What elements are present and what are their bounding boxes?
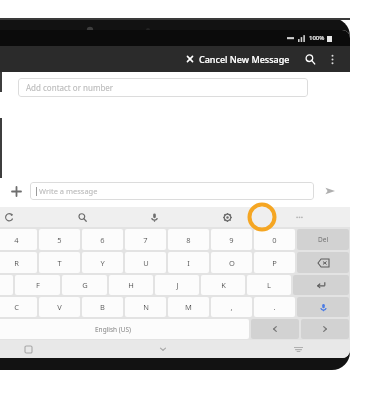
staticText: Del <box>318 235 329 244</box>
button[interactable]: 9 <box>211 229 252 250</box>
button[interactable]: Add attachment <box>6 181 26 201</box>
button[interactable]: L <box>247 275 291 295</box>
button[interactable]: T <box>39 252 80 273</box>
button[interactable]: mic <box>297 297 349 317</box>
staticText: U <box>143 258 149 268</box>
staticText: B <box>100 302 105 312</box>
staticText: R <box>14 258 19 268</box>
staticText: V <box>57 302 62 312</box>
button[interactable]: Move cursor right <box>301 319 349 339</box>
staticText: , <box>230 302 233 312</box>
button[interactable]: H <box>109 275 153 295</box>
staticText: 4 <box>14 235 19 245</box>
button[interactable]: backspace <box>297 252 349 273</box>
staticText: 8 <box>186 235 191 245</box>
button[interactable]: 6 <box>82 229 123 250</box>
button[interactable]: I <box>168 252 209 273</box>
button[interactable]: , <box>211 297 252 317</box>
staticText: . <box>273 302 276 312</box>
button[interactable]: 5 <box>39 229 80 250</box>
staticText: J <box>176 280 179 290</box>
button[interactable]: Write a message <box>30 182 314 200</box>
button[interactable]: Stickers <box>0 208 18 226</box>
staticText: Write a message <box>39 186 98 196</box>
staticText: Cancel New Message <box>199 53 290 65</box>
staticText: I <box>187 258 190 268</box>
staticText: 7 <box>143 235 148 245</box>
staticText: 9 <box>229 235 234 245</box>
button[interactable]: Recent apps <box>20 341 36 357</box>
button[interactable]: English (US) <box>0 319 249 339</box>
button[interactable]: Keyboard layout <box>290 341 306 357</box>
staticText: M <box>185 302 192 312</box>
button[interactable]: Send <box>320 181 340 201</box>
button[interactable]: O <box>211 252 252 273</box>
button[interactable]: Cancel New Message <box>182 50 294 68</box>
button[interactable]: Search <box>73 208 91 226</box>
button[interactable]: N <box>125 297 166 317</box>
button[interactable]: V <box>39 297 80 317</box>
staticText: G <box>82 280 88 290</box>
button[interactable]: Move cursor left <box>251 319 299 339</box>
button[interactable]: del <box>297 229 349 250</box>
button[interactable]: C <box>0 297 37 317</box>
staticText: 0 <box>272 235 277 245</box>
button[interactable]: P <box>254 252 295 273</box>
button[interactable]: 4 <box>0 229 37 250</box>
button[interactable]: More options <box>322 49 342 69</box>
button[interactable]: enter <box>293 275 349 295</box>
button[interactable]: More keyboard options <box>290 208 308 226</box>
button[interactable]: U <box>125 252 166 273</box>
button[interactable]: K <box>201 275 245 295</box>
staticText: Y <box>100 258 105 268</box>
button[interactable]: . <box>254 297 295 317</box>
staticText: 6 <box>100 235 105 245</box>
button[interactable]: M <box>168 297 209 317</box>
staticText: T <box>57 258 62 268</box>
staticText: K <box>221 280 226 290</box>
button[interactable]: F <box>15 275 60 295</box>
staticText: C <box>14 302 19 312</box>
staticText: N <box>143 302 149 312</box>
staticText: O <box>229 258 235 268</box>
button[interactable]: 7 <box>125 229 166 250</box>
staticText: 5 <box>57 235 62 245</box>
button[interactable]: 0 <box>254 229 295 250</box>
staticText: English (US) <box>95 325 132 334</box>
staticText: Add contact or number <box>26 82 114 93</box>
button[interactable]: B <box>82 297 123 317</box>
staticText: 100% <box>309 34 325 42</box>
button[interactable]: Add contact or number <box>18 78 308 97</box>
staticText: H <box>128 280 134 290</box>
staticText: F <box>36 280 40 290</box>
staticText: L <box>267 280 271 290</box>
staticText: P <box>272 258 277 268</box>
button[interactable]: Voice input <box>145 208 163 226</box>
other: Keyboard settings highlighted <box>247 202 277 232</box>
button[interactable]: Keyboard settings <box>218 208 236 226</box>
button[interactable]: G <box>62 275 107 295</box>
button[interactable]: 8 <box>168 229 209 250</box>
button[interactable]: J <box>155 275 199 295</box>
button[interactable]: Hide keyboard <box>155 341 171 357</box>
button[interactable]: R <box>0 252 37 273</box>
button[interactable]: Y <box>82 252 123 273</box>
button[interactable]: Search <box>300 49 320 69</box>
